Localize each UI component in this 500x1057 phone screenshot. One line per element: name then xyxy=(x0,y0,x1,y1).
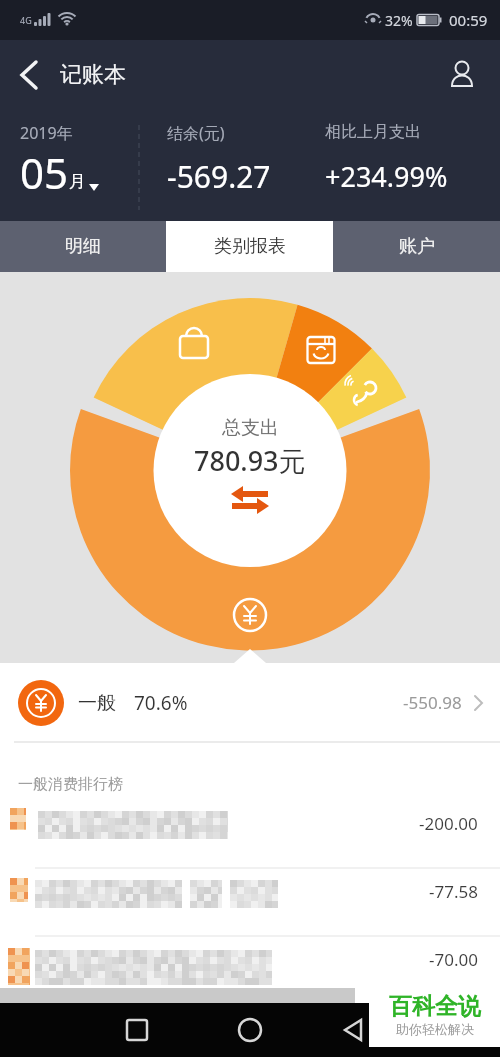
staticText: 记账本 xyxy=(60,61,126,89)
staticText: -77.58 xyxy=(429,880,478,903)
button[interactable] xyxy=(125,1018,149,1042)
staticText: -70.00 xyxy=(429,948,478,971)
button[interactable] xyxy=(12,57,48,93)
button[interactable]: 百科全说 xyxy=(369,992,500,1047)
staticText: 780.93元 xyxy=(194,442,306,479)
button[interactable]: 一般 xyxy=(0,663,500,742)
button[interactable]: 2019年 xyxy=(20,122,100,201)
staticText: 相比上月支出 xyxy=(325,122,421,142)
button[interactable] xyxy=(238,1018,262,1042)
staticText: 账户 xyxy=(399,235,435,258)
button[interactable]: 账户 xyxy=(333,221,500,272)
staticText: 一般消费排行榜 xyxy=(18,775,123,794)
staticText: 总支出 xyxy=(222,416,279,440)
button[interactable] xyxy=(446,59,478,91)
staticText: 类别报表 xyxy=(214,235,286,258)
staticText: 结余(元) xyxy=(167,122,225,144)
button[interactable]: 明细 xyxy=(0,221,166,272)
staticText: 百科全说 xyxy=(389,992,481,1021)
button[interactable] xyxy=(342,1018,366,1042)
staticText: -569.27 xyxy=(167,156,271,197)
staticText: 月 xyxy=(69,171,86,192)
staticText: 4G xyxy=(20,14,32,26)
staticText: 05 xyxy=(20,144,69,201)
staticText: 一般 xyxy=(78,691,116,715)
staticText: 助你轻松解决 xyxy=(396,1021,474,1037)
staticText: 2019年 xyxy=(20,122,73,144)
staticText: -200.00 xyxy=(419,812,478,835)
staticText: 明细 xyxy=(65,235,101,258)
staticText: 70.6% xyxy=(134,690,188,716)
staticText: -550.98 xyxy=(403,691,462,714)
staticText: +234.99% xyxy=(325,158,448,195)
staticText: 32% xyxy=(385,11,413,30)
staticText: 00:59 xyxy=(449,10,488,30)
button[interactable]: 类别报表 xyxy=(166,221,333,272)
